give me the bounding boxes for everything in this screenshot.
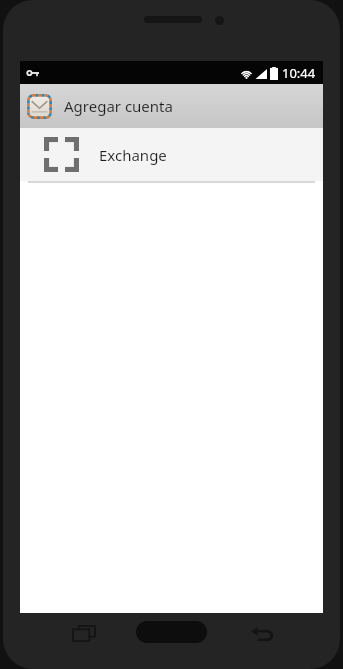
staticText: Exchange bbox=[99, 145, 167, 165]
button[interactable]: Home bbox=[136, 621, 207, 643]
button[interactable]: Exchange bbox=[20, 128, 323, 181]
button[interactable]: Back bbox=[247, 618, 277, 648]
button[interactable]: Agregar cuenta bbox=[20, 84, 323, 128]
staticText: 10:44 bbox=[282, 64, 316, 82]
staticText: Agregar cuenta bbox=[64, 96, 173, 116]
button[interactable]: Recents bbox=[69, 618, 99, 648]
